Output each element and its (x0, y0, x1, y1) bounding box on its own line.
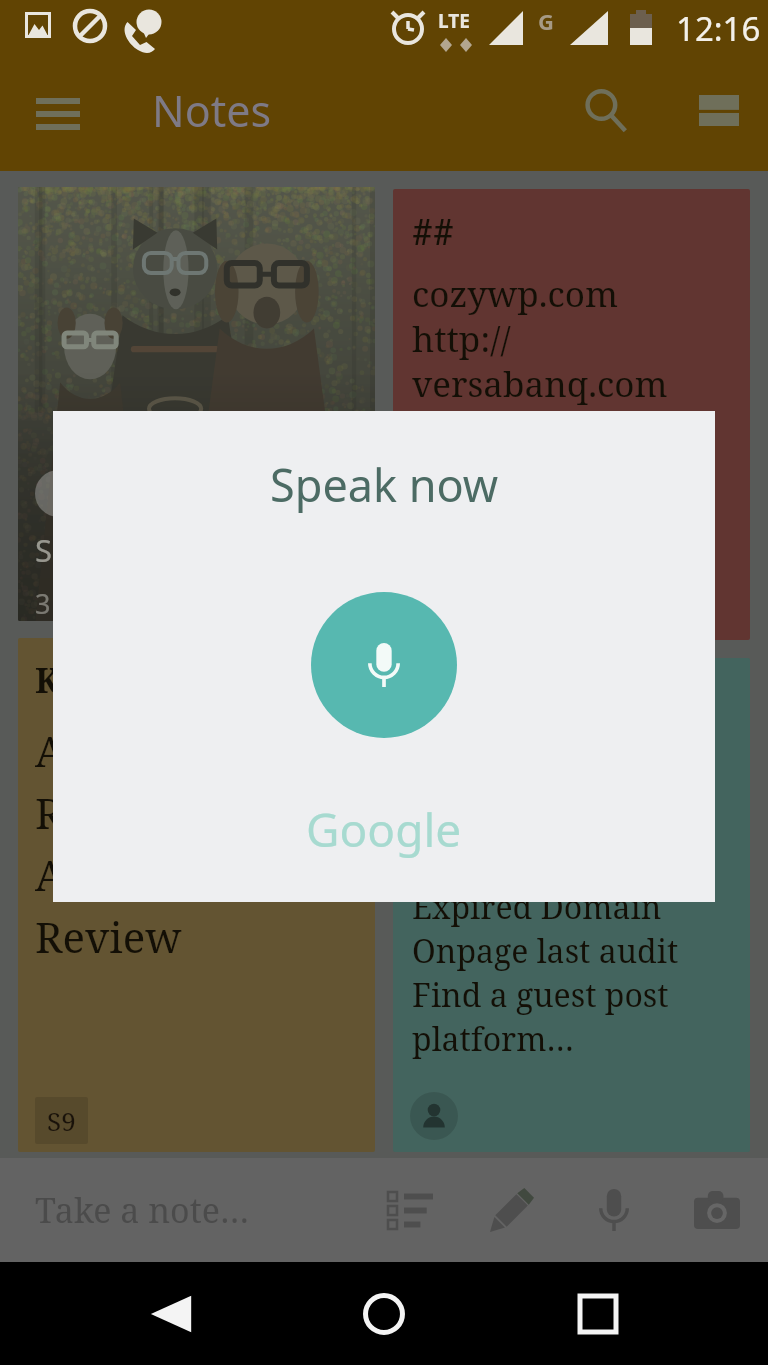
button[interactable]: Home (341, 1271, 427, 1357)
staticText: 3 m (35, 585, 83, 621)
staticText: cozywp.com http:// versabanq.com (412, 270, 668, 408)
button[interactable]: Sn (18, 187, 375, 621)
staticText: 12:16 (676, 6, 761, 51)
button[interactable]: New voice note (574, 1170, 654, 1250)
staticText: G (538, 6, 554, 36)
button[interactable]: Recent apps (555, 1271, 641, 1357)
staticText: Notes (152, 81, 272, 140)
button[interactable]: New photo note (677, 1170, 757, 1250)
button[interactable]: Back (128, 1271, 214, 1357)
staticText: ## (412, 205, 454, 255)
staticText: S9 (47, 1103, 76, 1138)
button[interactable]: Search (570, 75, 642, 147)
staticText: Add Read Article Review (35, 722, 182, 965)
staticText: Find new domain Check backlinks SEO chec… (412, 665, 691, 1061)
button[interactable]: Find new domain Check backlinks SEO chec… (393, 658, 750, 1152)
staticText: Google (306, 798, 462, 861)
button[interactable]: Open navigation drawer (22, 78, 94, 150)
button[interactable]: Keyword Research (18, 638, 375, 1152)
staticText: Speak now (270, 454, 499, 515)
button[interactable]: New drawing (472, 1170, 552, 1250)
staticText: Sn (35, 529, 72, 571)
button[interactable]: New list (370, 1170, 450, 1250)
button[interactable]: Microphone, tap to speak (311, 592, 457, 738)
staticText: Keyword Research (35, 657, 356, 703)
staticText: LTE (438, 8, 470, 34)
staticText: Take a note… (35, 1187, 250, 1233)
button[interactable]: ## (393, 189, 750, 640)
button[interactable]: Switch to list view (683, 74, 755, 146)
